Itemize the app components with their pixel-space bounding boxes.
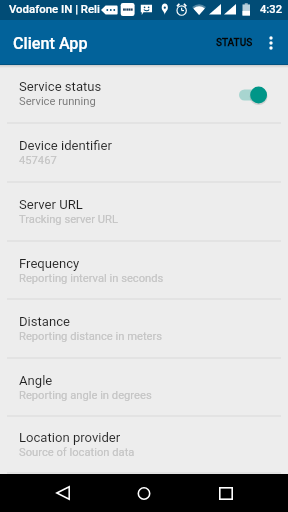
button[interactable]: Location provider <box>0 417 288 474</box>
button[interactable]: Frequency <box>0 242 288 300</box>
staticText: Distance <box>19 314 70 329</box>
staticText: Client App <box>13 34 88 53</box>
staticText: Vodafone IN | Reli <box>9 2 100 15</box>
staticText: Source of location data <box>19 446 135 459</box>
staticText: Reporting distance in meters <box>19 330 163 343</box>
button[interactable]: Home <box>125 474 163 512</box>
staticText: Tracking server URL <box>19 213 119 226</box>
staticText: Location provider <box>19 430 121 445</box>
button[interactable]: Server URL <box>0 183 288 242</box>
staticText: Device identifier <box>19 138 112 153</box>
staticText: 457467 <box>19 154 57 167</box>
staticText: Frequency <box>19 256 80 271</box>
staticText: Angle <box>19 373 53 388</box>
staticText: STATUS <box>216 37 253 49</box>
button[interactable]: Back <box>44 474 82 512</box>
staticText: Reporting angle in degrees <box>19 389 152 402</box>
button[interactable]: Device identifier <box>0 124 288 183</box>
staticText: 4:32 <box>260 3 283 16</box>
button[interactable]: More options <box>257 29 285 57</box>
button[interactable]: Service status <box>0 65 288 124</box>
button[interactable]: Angle <box>0 359 288 417</box>
button[interactable]: Recent apps <box>207 474 245 512</box>
staticText: Reporting interval in seconds <box>19 272 164 285</box>
button[interactable]: Distance <box>0 300 288 359</box>
staticText: Server URL <box>19 197 83 212</box>
staticText: Service status <box>19 79 102 94</box>
button[interactable]: STATUS <box>209 25 260 61</box>
staticText: Service running <box>19 95 96 108</box>
